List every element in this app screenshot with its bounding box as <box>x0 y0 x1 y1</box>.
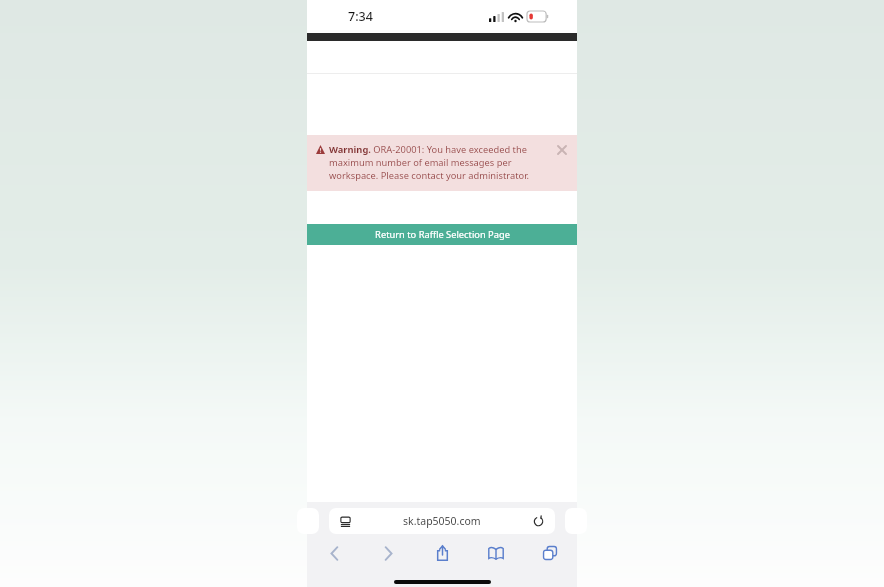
staticText: Return to Raffle Selection Page <box>375 228 510 241</box>
button[interactable]: Back <box>307 542 361 564</box>
button[interactable]: Return to Raffle Selection Page <box>307 224 577 245</box>
button[interactable]: Reload page <box>532 515 545 528</box>
button[interactable]: Forward <box>361 542 415 564</box>
button[interactable]: Dismiss warning <box>555 143 569 157</box>
button[interactable]: Bookmarks <box>469 542 523 564</box>
staticText: sk.tap5050.com <box>403 514 481 528</box>
button[interactable]: Share <box>415 542 469 564</box>
button[interactable]: Page settings <box>339 515 352 528</box>
staticText: Warning. ORA-20001: You have exceeded th… <box>329 143 551 182</box>
button[interactable]: Page settings <box>329 508 555 534</box>
button[interactable]: Tabs <box>523 542 577 564</box>
staticText: 7:34 <box>348 8 373 25</box>
